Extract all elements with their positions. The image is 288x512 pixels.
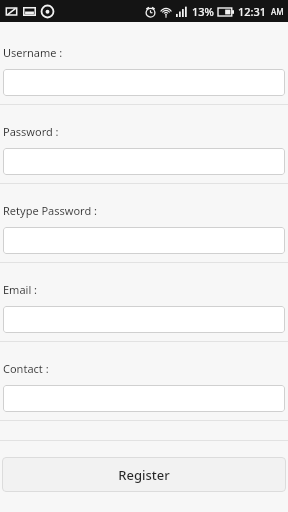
button[interactable] (3, 227, 285, 254)
staticText: AM (271, 6, 284, 17)
button[interactable]: Register (2, 457, 286, 492)
staticText: Password : (3, 124, 59, 139)
staticText: 12:31 (238, 4, 267, 19)
staticText: 13% (192, 4, 214, 19)
staticText: Register (118, 466, 170, 484)
staticText: Contact : (3, 361, 49, 376)
button[interactable] (3, 69, 285, 96)
staticText: Email : (3, 282, 38, 297)
button[interactable] (3, 148, 285, 175)
staticText: Username : (3, 45, 63, 60)
button[interactable] (3, 385, 285, 412)
button[interactable] (3, 306, 285, 333)
staticText: Retype Password : (3, 203, 98, 218)
